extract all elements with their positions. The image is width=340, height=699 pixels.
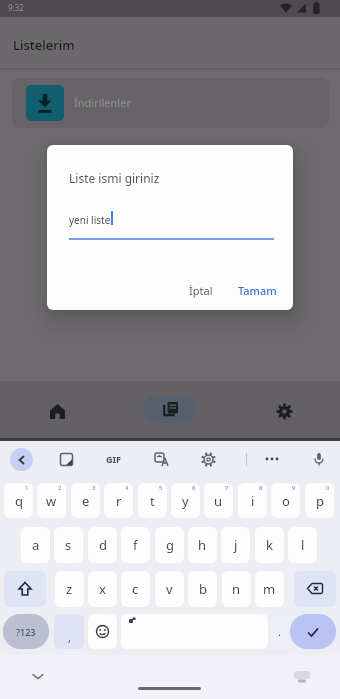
button[interactable] [38,393,76,429]
staticText: 5 [159,484,163,492]
button[interactable]: f [121,527,150,563]
button[interactable]: a [21,527,50,563]
button[interactable] [260,447,284,471]
staticText: . [278,624,281,639]
button[interactable]: d [88,527,117,563]
button[interactable]: r [104,483,133,518]
button[interactable]: y [171,483,200,518]
button[interactable]: g [155,527,184,563]
staticText: l [301,536,305,554]
button[interactable]: p [305,483,334,518]
button[interactable]: ?123 [3,614,49,649]
staticText: k [266,536,273,554]
staticText: z [66,580,73,598]
staticText: y [182,492,189,510]
button[interactable]: b [188,571,217,607]
button[interactable]: m [255,571,284,607]
staticText: d [99,536,107,554]
button[interactable]: İndirilenler [12,78,329,128]
staticText: c [132,580,139,598]
button[interactable]: GIF [100,447,126,471]
button[interactable]: e [71,483,100,518]
staticText: r [116,492,122,510]
staticText: i [251,492,255,510]
staticText: j [234,536,238,554]
staticText: f [133,536,138,554]
staticText: o [282,492,290,510]
button[interactable]: s [54,527,83,563]
button[interactable]: i [238,483,267,518]
button[interactable]: v [155,571,184,607]
staticText: yeni liste [69,213,111,227]
staticText: e [82,492,90,510]
staticText: u [214,492,223,510]
button[interactable]: w [37,483,66,518]
button[interactable]: , [54,614,84,649]
button[interactable]: j [221,527,250,563]
button[interactable]: q [4,483,33,518]
staticText: x [99,580,106,598]
button[interactable]: İptal [175,277,227,303]
button[interactable] [10,448,33,471]
staticText: , [68,630,71,645]
staticText: GIF [106,453,121,465]
staticText: 4 [125,484,129,492]
button[interactable] [307,447,331,471]
button[interactable] [294,571,336,607]
staticText: 2 [58,484,62,492]
button[interactable] [196,447,220,471]
staticText: 9:32 [8,2,24,13]
button[interactable] [290,614,336,649]
staticText: 9 [292,484,296,492]
button[interactable]: o [271,483,300,518]
staticText: s [65,536,72,554]
button[interactable] [143,396,197,423]
button[interactable]: c [121,571,150,607]
staticText: Liste ismi giriniz [69,170,160,186]
button[interactable]: x [88,571,117,607]
button[interactable]: . [271,614,288,649]
button[interactable]: z [55,571,84,607]
button[interactable]: u [204,483,233,518]
staticText: n [232,580,241,598]
button[interactable] [54,447,78,471]
staticText: 3 [92,484,96,492]
button[interactable]: k [255,527,284,563]
staticText: p [316,492,324,510]
staticText: t [150,492,155,510]
button[interactable] [4,571,46,607]
button[interactable]: Tamam [229,277,285,303]
staticText: Tamam [238,283,277,298]
staticText: h [198,536,207,554]
staticText: m [263,580,276,598]
staticText: w [46,492,57,510]
staticText: İndirilenler [74,95,131,110]
button[interactable]: l [288,527,317,563]
button[interactable] [121,614,268,649]
staticText: 6 [192,484,196,492]
button[interactable]: t [138,483,167,518]
button[interactable] [88,614,117,649]
staticText: v [166,580,173,598]
staticText: q [15,492,23,510]
button[interactable]: n [222,571,251,607]
staticText: a [32,536,40,554]
button[interactable]: h [188,527,217,563]
staticText: b [199,580,207,598]
staticText: 0 [326,484,330,492]
button[interactable] [149,447,173,471]
staticText: İptal [189,283,213,298]
staticText: 8 [259,484,263,492]
staticText: ?123 [16,626,36,638]
button[interactable] [265,393,303,429]
staticText: Listelerim [13,36,75,54]
staticText: g [166,536,174,554]
staticText: 7 [225,484,229,492]
staticText: 1 [25,484,29,492]
